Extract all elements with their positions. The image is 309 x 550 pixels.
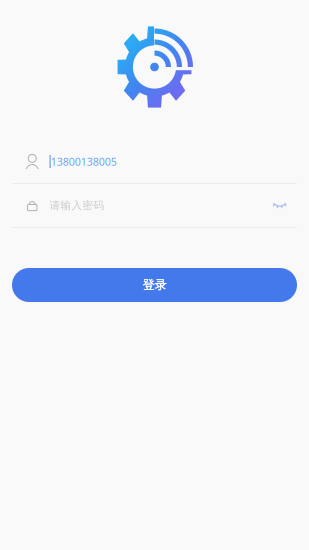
staticText: 登录 <box>142 277 166 292</box>
staticText: 13800138005 <box>51 154 117 169</box>
button[interactable]: 登录 <box>12 268 297 302</box>
button[interactable]: Show password <box>265 194 294 216</box>
staticText: 请输入密码 <box>49 199 104 212</box>
